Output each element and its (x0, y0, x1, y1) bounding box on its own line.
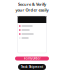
staticText: your Order easily (15, 7, 48, 12)
staticText: Secure & Verify (18, 1, 46, 7)
button[interactable]: Verify Order (15, 56, 49, 60)
button[interactable]: Track Shipment (18, 64, 46, 70)
staticText: Track Shipment (21, 65, 43, 69)
staticText: Verify Order (23, 57, 40, 60)
